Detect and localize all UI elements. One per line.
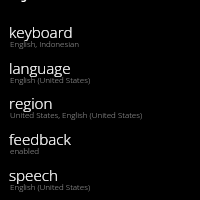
staticText: keyboard <box>9 22 73 43</box>
staticText: English, Indonesian <box>10 38 79 49</box>
button[interactable]: keyboard <box>0 22 200 58</box>
staticText: language <box>9 58 71 79</box>
staticText: system <box>11 0 84 2</box>
staticText: region <box>9 93 53 114</box>
staticText: feedback <box>9 129 71 150</box>
staticText: English (United States) <box>10 74 91 85</box>
button[interactable]: language <box>0 58 200 94</box>
button[interactable]: speech <box>0 165 200 200</box>
staticText: speech <box>9 165 58 186</box>
button[interactable]: region <box>0 93 200 129</box>
staticText: enabled <box>10 145 40 156</box>
button[interactable]: feedback <box>0 129 200 165</box>
staticText: English (United States) <box>10 181 91 192</box>
staticText: United States, English (United States) <box>10 109 143 120</box>
